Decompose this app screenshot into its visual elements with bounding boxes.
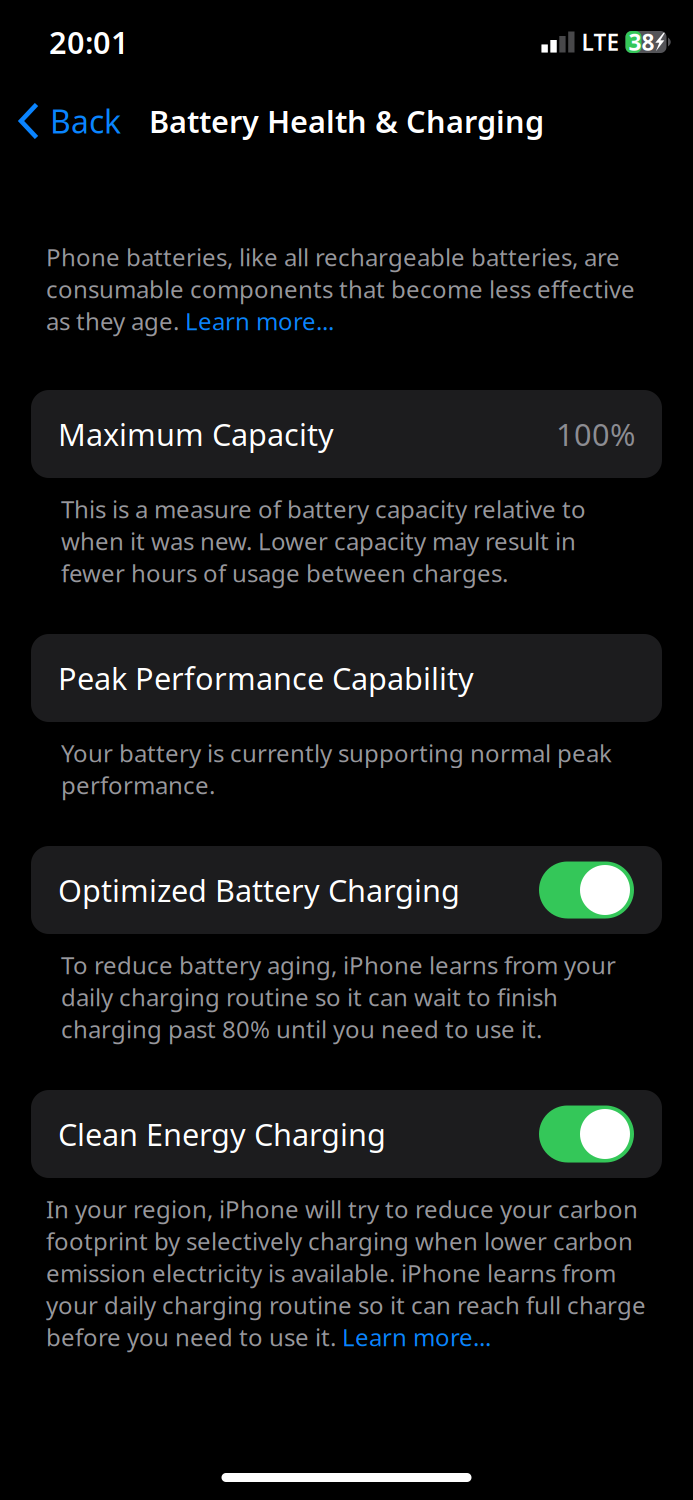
button[interactable]: Maximum Capacity [31, 390, 662, 478]
staticText: Your battery is currently supporting nor… [61, 737, 612, 769]
staticText: Clean Energy Charging [58, 1114, 386, 1154]
button[interactable]: Learn more... [185, 305, 334, 337]
staticText: when it was new. Lower capacity may resu… [61, 525, 576, 557]
staticText: In your region, iPhone will try to reduc… [46, 1193, 638, 1225]
staticText: charging past 80% until you need to use … [61, 1013, 542, 1045]
staticText: fewer hours of usage between charges. [61, 557, 508, 589]
staticText: Maximum Capacity [58, 414, 334, 454]
staticText: Battery Health & Charging [149, 101, 544, 141]
staticText: Peak Performance Capability [58, 658, 474, 698]
staticText: consumable components that become less e… [46, 273, 635, 305]
staticText: To reduce battery aging, iPhone learns f… [61, 949, 616, 981]
staticText: footprint by selectively charging when l… [46, 1225, 633, 1257]
staticText: Learn more... [342, 1321, 491, 1353]
button[interactable]: Learn more... [342, 1321, 491, 1353]
staticText: Optimized Battery Charging [58, 870, 460, 910]
staticText: Back [50, 100, 121, 142]
staticText: daily charging routine so it can wait to… [61, 981, 558, 1013]
staticText: Phone batteries, like all rechargeable b… [46, 241, 620, 273]
staticText: Learn more... [185, 305, 334, 337]
staticText: 20:01 [49, 22, 129, 62]
staticText: emission electricity is available. iPhon… [46, 1257, 616, 1289]
staticText: This is a measure of battery capacity re… [61, 493, 586, 525]
staticText: LTE [581, 27, 619, 57]
button[interactable]: Clean Energy Charging [31, 1090, 662, 1178]
button[interactable]: Back [0, 90, 121, 152]
staticText: your daily charging routine so it can re… [46, 1289, 646, 1321]
button[interactable]: Peak Performance Capability [31, 634, 662, 722]
staticText: 100% [556, 414, 635, 454]
staticText: as they age. [46, 305, 185, 337]
staticText: before you need to use it. [46, 1321, 342, 1353]
staticText: performance. [61, 769, 215, 801]
button[interactable]: Optimized Battery Charging [31, 846, 662, 934]
staticText: 38 [628, 27, 654, 57]
